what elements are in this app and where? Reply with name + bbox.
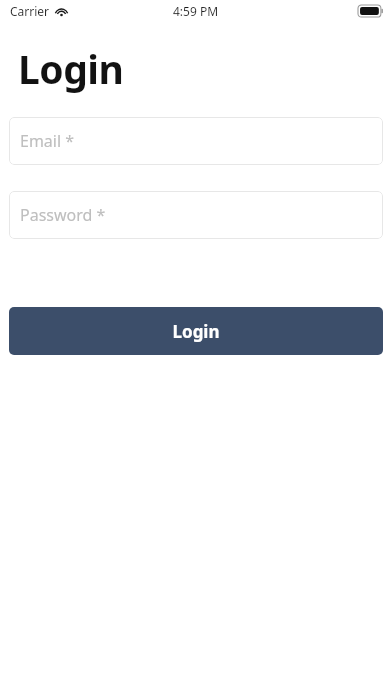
button[interactable]: Password input field [9, 191, 383, 239]
staticText: Login [18, 42, 124, 95]
staticText: Carrier [10, 3, 50, 19]
button[interactable]: Email input field [9, 117, 383, 165]
staticText: Password * [20, 204, 106, 226]
staticText: Login [172, 320, 220, 343]
button[interactable]: Login [9, 307, 383, 355]
staticText: 4:59 PM [173, 3, 219, 19]
staticText: Email * [20, 130, 75, 152]
